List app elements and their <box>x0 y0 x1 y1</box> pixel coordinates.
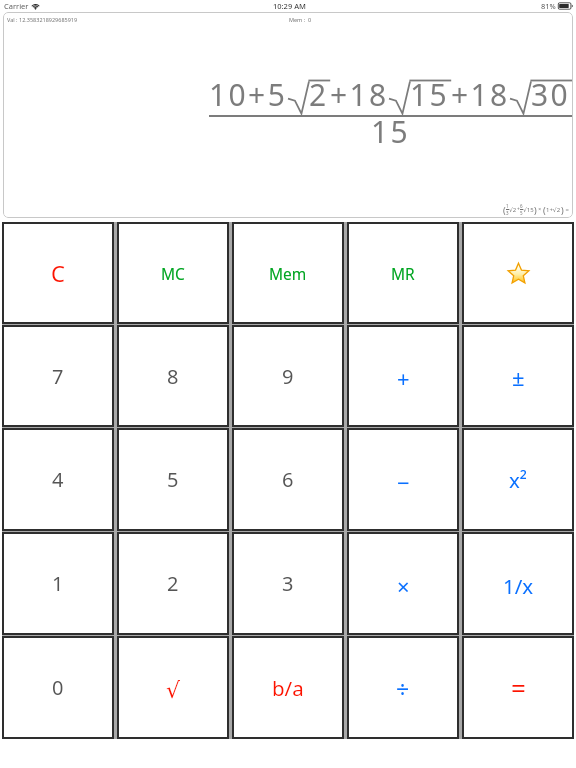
button[interactable]: 2 <box>117 532 229 635</box>
button[interactable]: x² <box>462 428 574 531</box>
staticText: + <box>517 206 520 213</box>
staticText: 1+√2 <box>546 206 561 214</box>
staticText: ± <box>512 362 525 392</box>
button[interactable]: = <box>462 636 574 739</box>
button[interactable]: + <box>347 325 459 427</box>
button[interactable]: 6 <box>232 428 344 531</box>
staticText: 10+5 <box>209 74 288 115</box>
staticText: Val : 12.3583218929685919 <box>7 16 78 23</box>
staticText: 3 <box>506 210 509 216</box>
staticText: 81% <box>541 1 556 11</box>
button[interactable]: b/a <box>232 636 344 739</box>
button[interactable]: 7 <box>2 325 114 427</box>
staticText: 30 <box>531 74 571 115</box>
staticText: = <box>511 670 526 705</box>
staticText: 1 <box>506 203 509 209</box>
staticText: 1/x <box>503 572 534 600</box>
staticText: 9 <box>282 363 294 390</box>
staticText: x² <box>509 466 528 494</box>
button[interactable]: ÷ <box>347 636 459 739</box>
staticText: √ <box>166 678 181 704</box>
staticText: ( <box>543 204 546 216</box>
staticText: 6 <box>520 203 523 209</box>
button[interactable]: MC <box>117 222 229 324</box>
button[interactable]: C <box>2 222 114 324</box>
staticText: 5 <box>167 466 179 493</box>
button[interactable]: 0 <box>2 636 114 739</box>
staticText: × <box>397 571 410 601</box>
button[interactable]: 1/x <box>462 532 574 635</box>
staticText: ÷ <box>396 673 410 704</box>
staticText: × <box>537 206 543 213</box>
button[interactable]: 3 <box>232 532 344 635</box>
staticText: 15 <box>371 111 411 152</box>
staticText: 6 <box>282 466 294 493</box>
staticText: 10:29 AM <box>273 1 306 11</box>
button[interactable]: × <box>347 532 459 635</box>
staticText: ) <box>561 204 564 216</box>
staticText: +18 <box>330 74 389 115</box>
staticText: MR <box>391 263 415 284</box>
staticText: b/a <box>272 674 304 702</box>
staticText: 15 <box>410 74 450 115</box>
staticText: √15 <box>523 206 534 214</box>
button[interactable]: √ <box>117 636 229 739</box>
staticText: 3 <box>282 570 294 597</box>
button[interactable]: MR <box>347 222 459 324</box>
staticText: C <box>51 258 65 288</box>
button[interactable]: 5 <box>117 428 229 531</box>
staticText: 4 <box>52 466 64 493</box>
button[interactable]: 9 <box>232 325 344 427</box>
staticText: − <box>397 467 410 497</box>
button[interactable]: Favourite <box>462 222 574 324</box>
staticText: 8 <box>167 363 179 390</box>
button[interactable]: 4 <box>2 428 114 531</box>
staticText: √2 <box>509 206 517 214</box>
staticText: Carrier <box>4 1 29 11</box>
staticText: Mem : 0 <box>289 16 312 23</box>
button[interactable]: 8 <box>117 325 229 427</box>
staticText: 5 <box>520 210 523 216</box>
staticText: Mem <box>269 263 307 284</box>
staticText: 7 <box>52 363 64 390</box>
staticText: 1 <box>52 570 64 597</box>
staticText: ( <box>503 204 506 216</box>
staticText: = <box>564 206 569 214</box>
staticText: 2 <box>167 570 179 597</box>
button[interactable]: 1 <box>2 532 114 635</box>
staticText: + <box>397 363 410 393</box>
button[interactable]: − <box>347 428 459 531</box>
staticText: +18 <box>451 74 510 115</box>
button[interactable]: Mem <box>232 222 344 324</box>
staticText: ) <box>534 204 537 216</box>
staticText: 0 <box>52 674 64 701</box>
button[interactable]: ± <box>462 325 574 427</box>
staticText: MC <box>161 263 185 284</box>
staticText: 2 <box>309 74 329 115</box>
